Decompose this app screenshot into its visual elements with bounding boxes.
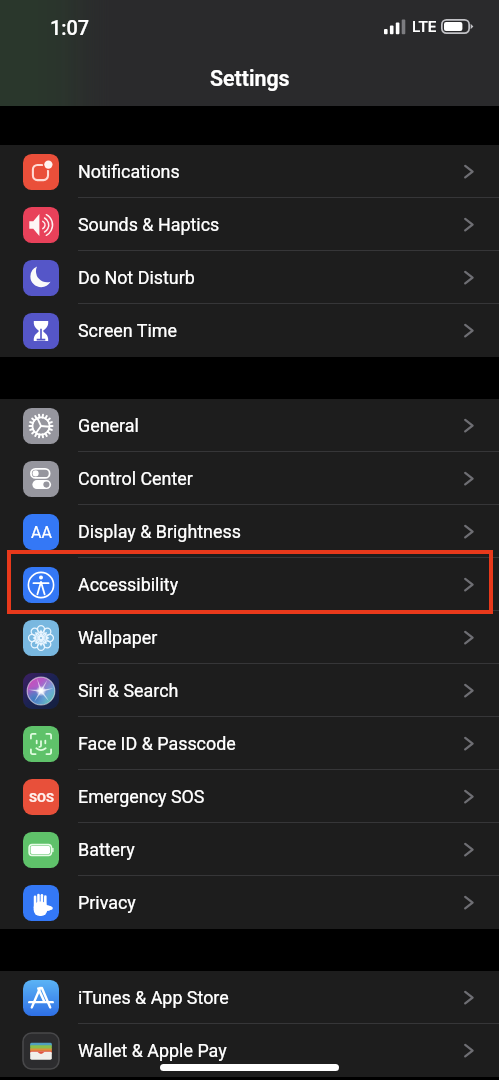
staticText: Wallet & Apple Pay — [78, 1040, 227, 1061]
staticText: Display & Brightness — [78, 521, 241, 542]
button[interactable]: Control Center — [0, 452, 499, 505]
staticText: Do Not Disturb — [78, 267, 195, 288]
staticText: iTunes & App Store — [78, 987, 229, 1008]
staticText: Accessibility — [78, 574, 179, 595]
button[interactable]: SOS — [0, 770, 499, 823]
staticText: 1:07 — [50, 17, 90, 40]
staticText: Emergency SOS — [78, 786, 205, 807]
staticText: General — [78, 415, 139, 436]
staticText: Settings — [210, 66, 290, 91]
button[interactable]: Screen Time — [0, 304, 499, 357]
staticText: Sounds & Haptics — [78, 214, 220, 235]
button[interactable]: General — [0, 399, 499, 452]
staticText: LTE — [412, 18, 437, 36]
button[interactable]: Battery — [0, 823, 499, 876]
staticText: Screen Time — [78, 320, 178, 341]
staticText: Notifications — [78, 161, 180, 182]
button[interactable]: Face ID & Passcode — [0, 717, 499, 770]
button[interactable]: iTunes & App Store — [0, 971, 499, 1024]
button[interactable]: Wallet & Apple Pay — [0, 1024, 499, 1077]
button[interactable]: Notifications — [0, 145, 499, 198]
staticText: SOS — [29, 790, 54, 805]
staticText: Privacy — [78, 892, 136, 913]
button[interactable]: Sounds & Haptics — [0, 198, 499, 251]
button[interactable]: Siri & Search — [0, 664, 499, 717]
staticText: Control Center — [78, 468, 193, 489]
button[interactable]: AA — [0, 505, 499, 558]
staticText: AA — [31, 523, 52, 542]
staticText: Wallpaper — [78, 627, 158, 648]
button[interactable]: Accessibility — [0, 558, 499, 611]
button[interactable]: Wallpaper — [0, 611, 499, 664]
staticText: Siri & Search — [78, 680, 179, 701]
staticText: Battery — [78, 839, 135, 860]
staticText: Face ID & Passcode — [78, 733, 236, 754]
button[interactable]: Privacy — [0, 876, 499, 929]
button[interactable]: Do Not Disturb — [0, 251, 499, 304]
